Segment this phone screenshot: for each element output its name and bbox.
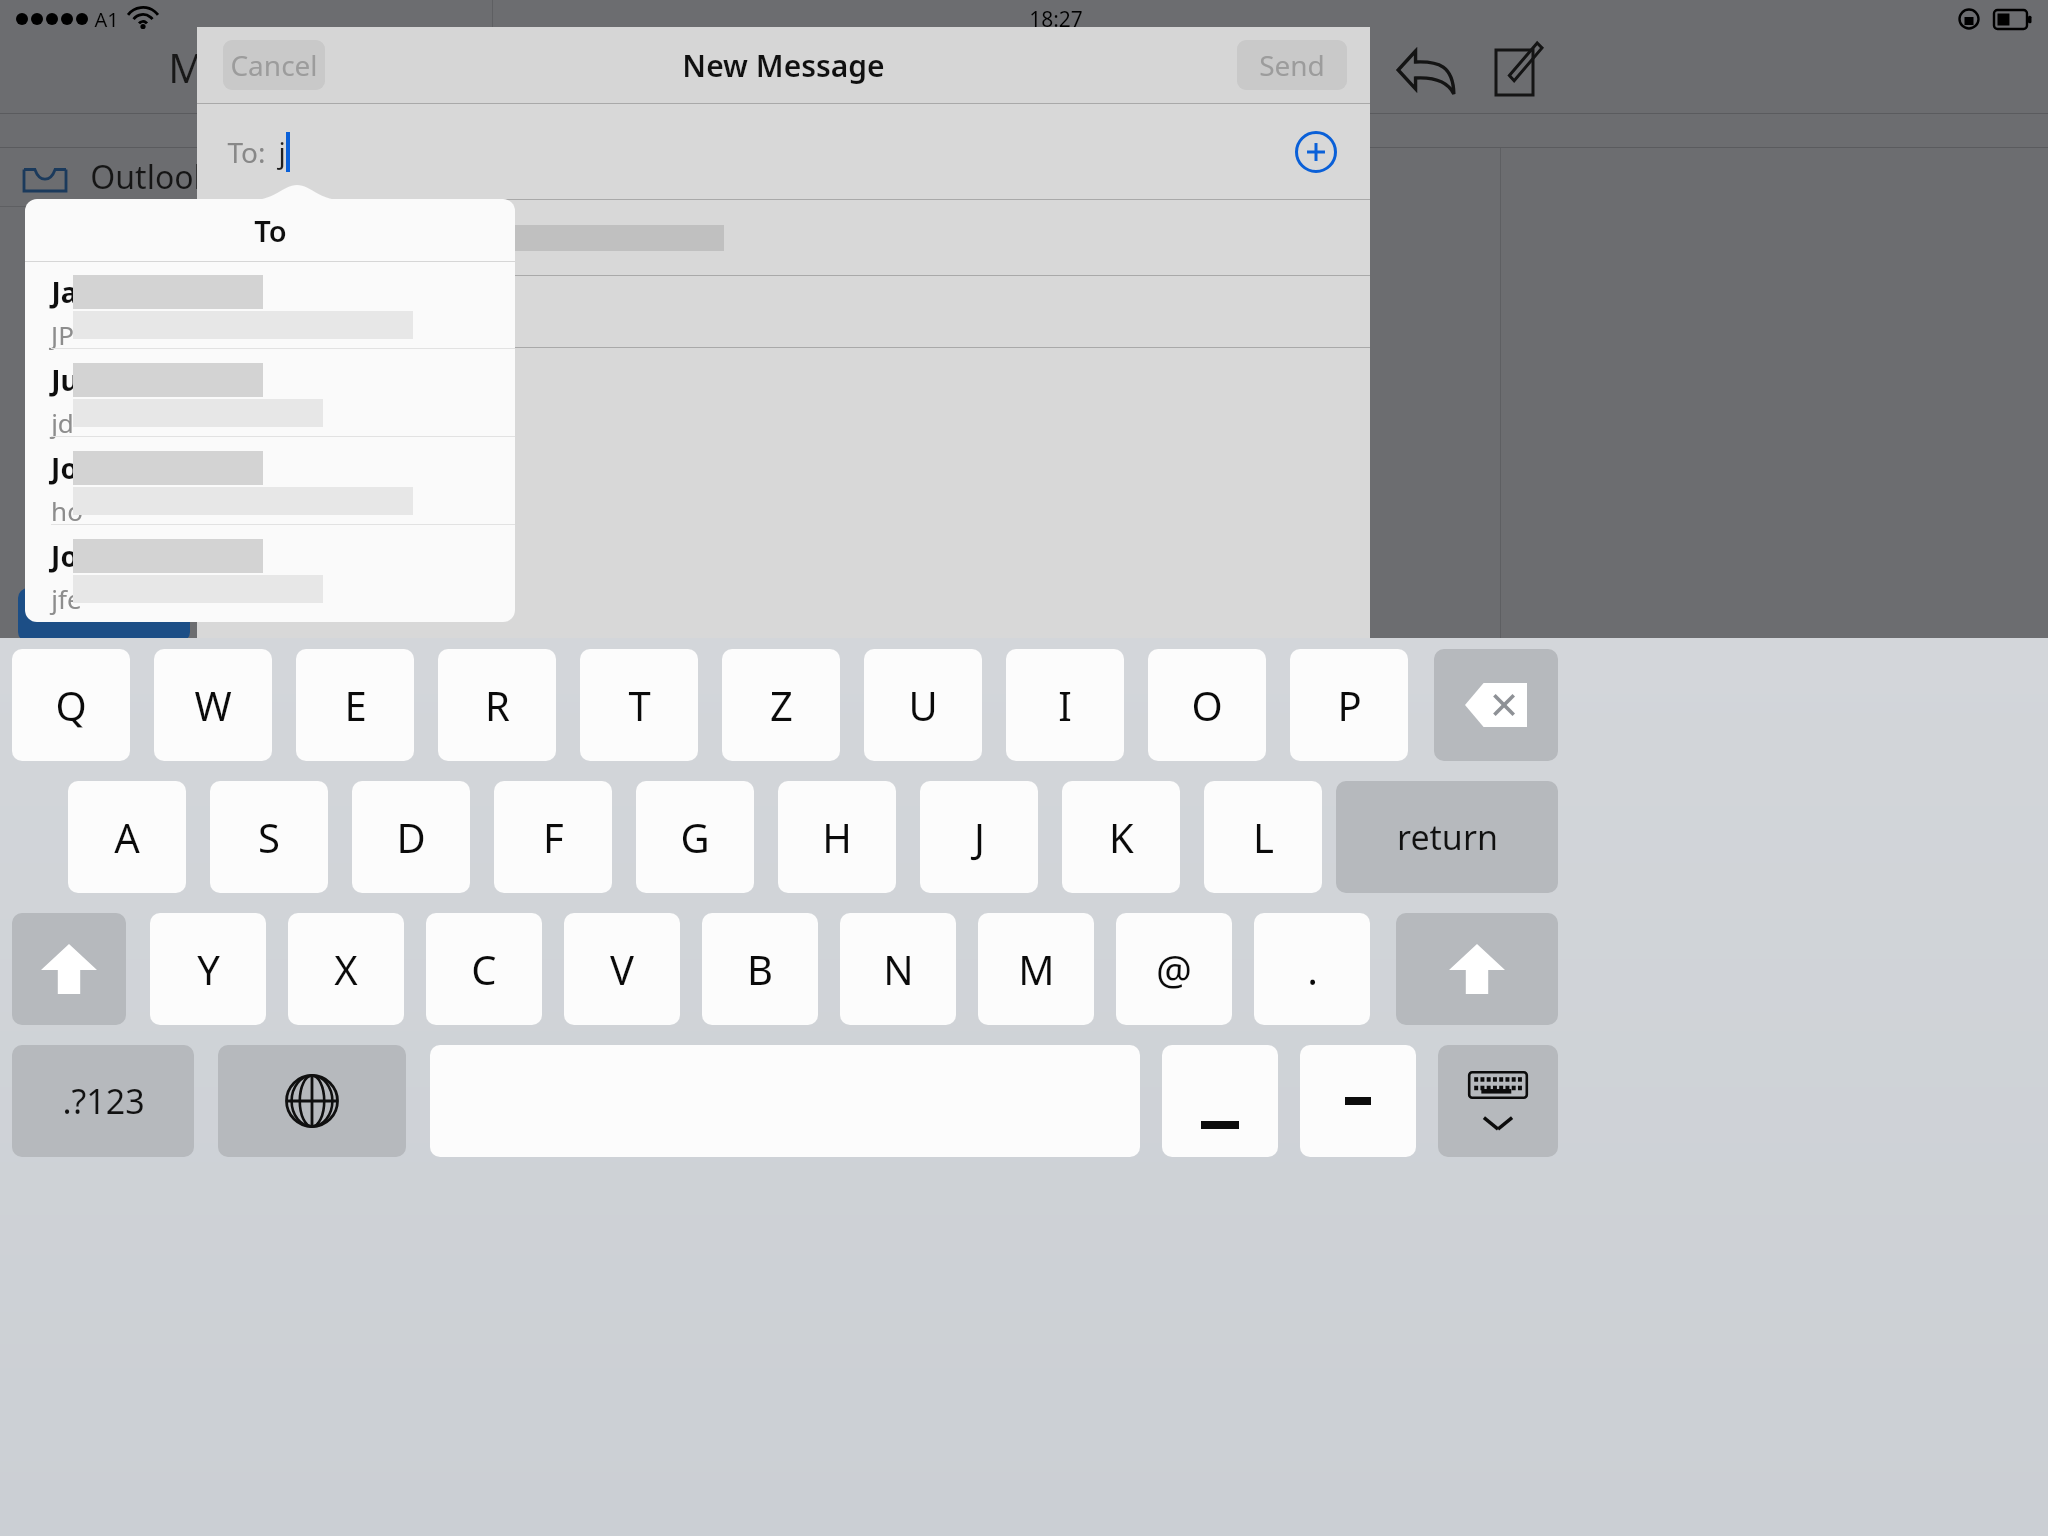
button[interactable]: Backspace <box>1434 649 1558 761</box>
button[interactable]: K <box>1062 781 1180 893</box>
button[interactable]: Y <box>150 913 266 1025</box>
button[interactable]: Shift <box>1396 913 1558 1025</box>
staticText: P <box>1337 678 1362 732</box>
staticText: R <box>485 678 510 732</box>
button[interactable]: M <box>978 913 1094 1025</box>
staticText: Cancel <box>230 46 318 84</box>
staticText: Ju <box>51 361 79 399</box>
button[interactable]: return <box>1336 781 1558 893</box>
button[interactable]: Hide keyboard <box>1438 1045 1558 1157</box>
button[interactable]: . <box>1254 913 1370 1025</box>
staticText: Y <box>197 942 220 996</box>
button[interactable]: C <box>426 913 542 1025</box>
staticText: @ <box>1156 942 1192 996</box>
staticText: D <box>396 810 426 864</box>
button[interactable]: R <box>438 649 556 761</box>
staticText: Outlook <box>90 155 211 199</box>
button[interactable]: E <box>296 649 414 761</box>
staticText: T <box>628 678 651 732</box>
button[interactable]: N <box>840 913 956 1025</box>
staticText: G <box>680 810 710 864</box>
staticText: W <box>194 678 232 732</box>
staticText: Send <box>1259 46 1325 84</box>
button[interactable]: P <box>1290 649 1408 761</box>
button[interactable]: L <box>1204 781 1322 893</box>
button[interactable]: Hyphen <box>1300 1045 1416 1157</box>
button[interactable]: U <box>864 649 982 761</box>
staticText: F <box>543 810 564 864</box>
staticText: V <box>610 942 634 996</box>
button[interactable]: Q <box>12 649 130 761</box>
staticText: B <box>747 942 773 996</box>
button[interactable]: Send <box>1237 40 1347 90</box>
staticText: jd <box>51 405 74 440</box>
staticText: To: <box>227 133 266 171</box>
button[interactable]: Shift <box>12 913 126 1025</box>
button[interactable]: T <box>580 649 698 761</box>
button[interactable]: G <box>636 781 754 893</box>
button[interactable]: Next keyboard <box>218 1045 406 1157</box>
button[interactable]: D <box>352 781 470 893</box>
staticText: L <box>1253 810 1274 864</box>
staticText: Jo <box>51 449 78 487</box>
staticText: N <box>883 942 914 996</box>
staticText: I <box>1058 678 1072 732</box>
staticText: X <box>334 942 358 996</box>
staticText: To <box>254 211 287 250</box>
staticText: return <box>1397 814 1498 860</box>
button[interactable]: Add contact <box>1282 118 1350 186</box>
staticText: M <box>168 40 205 94</box>
staticText: 18:27 <box>1029 5 1083 34</box>
staticText: ho <box>51 493 83 528</box>
staticText: New Message <box>682 45 885 86</box>
button[interactable]: F <box>494 781 612 893</box>
staticText: Q <box>55 678 87 732</box>
staticText: U <box>908 678 938 732</box>
button[interactable]: S <box>210 781 328 893</box>
staticText: j <box>278 133 286 171</box>
button[interactable]: Cancel <box>223 40 325 90</box>
button[interactable]: V <box>564 913 680 1025</box>
button[interactable]: Reply <box>1382 26 1470 114</box>
button[interactable]: Z <box>722 649 840 761</box>
button[interactable]: Ja <box>25 261 515 349</box>
button[interactable]: Jo <box>25 525 515 613</box>
staticText: . <box>1307 942 1318 996</box>
button[interactable]: .?123 <box>12 1045 194 1157</box>
button[interactable]: Compose <box>1474 26 1562 114</box>
button[interactable]: A <box>68 781 186 893</box>
staticText: S <box>258 810 280 864</box>
button[interactable]: Outlook <box>22 148 490 206</box>
button[interactable]: Underscore <box>1162 1045 1278 1157</box>
button[interactable]: W <box>154 649 272 761</box>
staticText: JP <box>51 317 74 352</box>
staticText: O <box>1191 678 1223 732</box>
staticText: .?123 <box>62 1078 145 1124</box>
button[interactable]: J <box>920 781 1038 893</box>
staticText: jfe <box>51 581 82 616</box>
staticText: C <box>471 942 497 996</box>
button[interactable]: B <box>702 913 818 1025</box>
button[interactable]: H <box>778 781 896 893</box>
button[interactable]: Jo <box>25 437 515 525</box>
staticText: A <box>114 810 140 864</box>
button[interactable]: O <box>1148 649 1266 761</box>
staticText: Jo <box>51 537 78 575</box>
button[interactable]: I <box>1006 649 1124 761</box>
staticText: Z <box>770 678 793 732</box>
staticText: E <box>344 678 367 732</box>
staticText: M <box>1018 942 1055 996</box>
staticText: H <box>822 810 852 864</box>
button[interactable]: @ <box>1116 913 1232 1025</box>
staticText: Ja <box>51 273 78 311</box>
button[interactable]: X <box>288 913 404 1025</box>
staticText: J <box>974 810 985 864</box>
button[interactable]: Ju <box>25 349 515 437</box>
staticText: A1 <box>94 6 119 33</box>
staticText: K <box>1109 810 1134 864</box>
